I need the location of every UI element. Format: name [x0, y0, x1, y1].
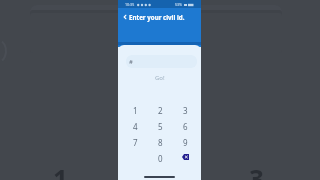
- staticText: 3: [183, 105, 188, 116]
- staticText: Go!: [155, 74, 165, 82]
- staticText: 53%: [175, 2, 183, 7]
- button[interactable]: Backspace: [182, 154, 189, 160]
- staticText: 0: [158, 153, 163, 164]
- button[interactable]: 8: [148, 134, 173, 150]
- staticText: 10:35: [125, 2, 135, 7]
- staticText: 7: [133, 137, 138, 148]
- staticText: 5: [158, 121, 163, 132]
- button[interactable]: 7: [123, 134, 148, 150]
- button[interactable]: 9: [173, 134, 198, 150]
- button[interactable]: 3: [173, 102, 198, 118]
- staticText: 2: [158, 105, 163, 116]
- button[interactable]: 4: [123, 118, 148, 134]
- button[interactable]: Go!: [118, 73, 201, 83]
- button[interactable]: #: [126, 55, 197, 68]
- button[interactable]: Back: [120, 12, 129, 21]
- button[interactable]: Backspace: [173, 150, 198, 166]
- staticText: 8: [158, 137, 163, 148]
- staticText: Enter your civil id.: [129, 13, 185, 21]
- staticText: 1: [53, 161, 68, 180]
- button[interactable]: 6: [173, 118, 198, 134]
- button[interactable]: 0: [148, 150, 173, 166]
- staticText: 3: [249, 161, 264, 180]
- staticText: #: [129, 58, 133, 66]
- button[interactable]: 2: [148, 102, 173, 118]
- staticText: 1: [133, 105, 138, 116]
- staticText: 6: [183, 121, 188, 132]
- staticText: 4: [133, 121, 138, 132]
- button[interactable]: 5: [148, 118, 173, 134]
- staticText: 9: [183, 137, 188, 148]
- button[interactable]: 1: [123, 102, 148, 118]
